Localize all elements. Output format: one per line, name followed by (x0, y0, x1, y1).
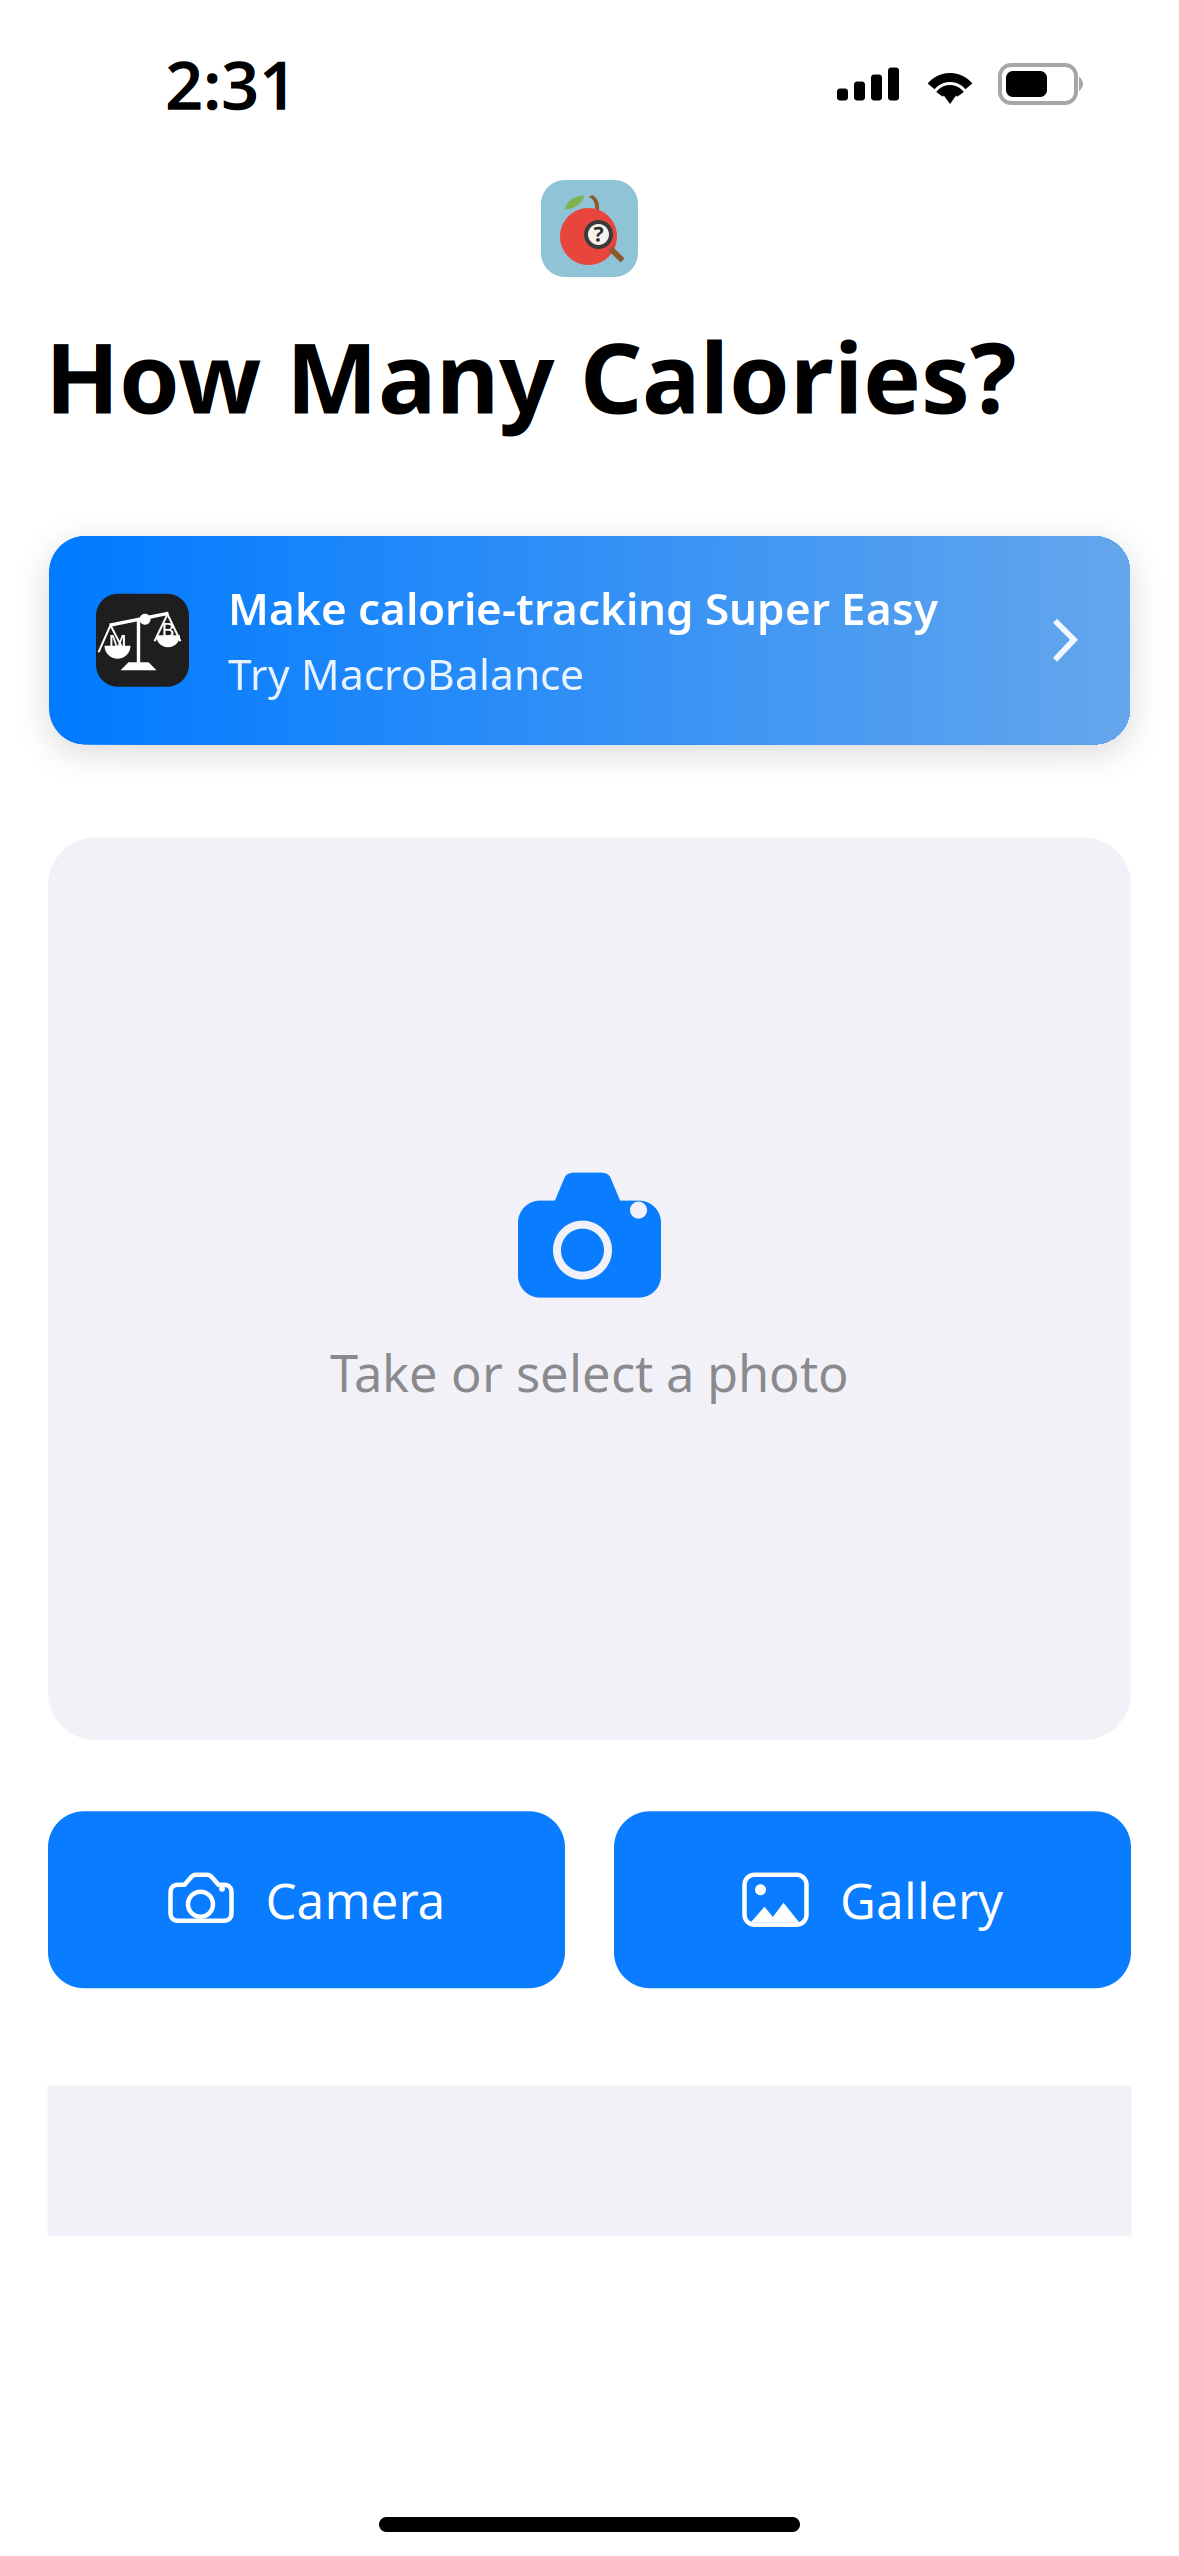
staticText: ? (593, 219, 603, 248)
button[interactable]: Gallery (614, 1811, 1131, 1988)
button[interactable]: M (49, 536, 1130, 744)
staticText: B (161, 616, 174, 643)
staticText: Try MacroBalance (228, 645, 584, 702)
button[interactable]: Camera (48, 1811, 565, 1988)
staticText: How Many Calories? (45, 311, 1016, 440)
staticText: Make calorie-tracking Super Easy (228, 579, 938, 637)
staticText: Take or select a photo (330, 1339, 849, 1406)
staticText: Camera (265, 1867, 445, 1932)
staticText: 2:31 (165, 40, 297, 128)
staticText: M (108, 628, 126, 655)
staticText: Gallery (840, 1867, 1003, 1932)
